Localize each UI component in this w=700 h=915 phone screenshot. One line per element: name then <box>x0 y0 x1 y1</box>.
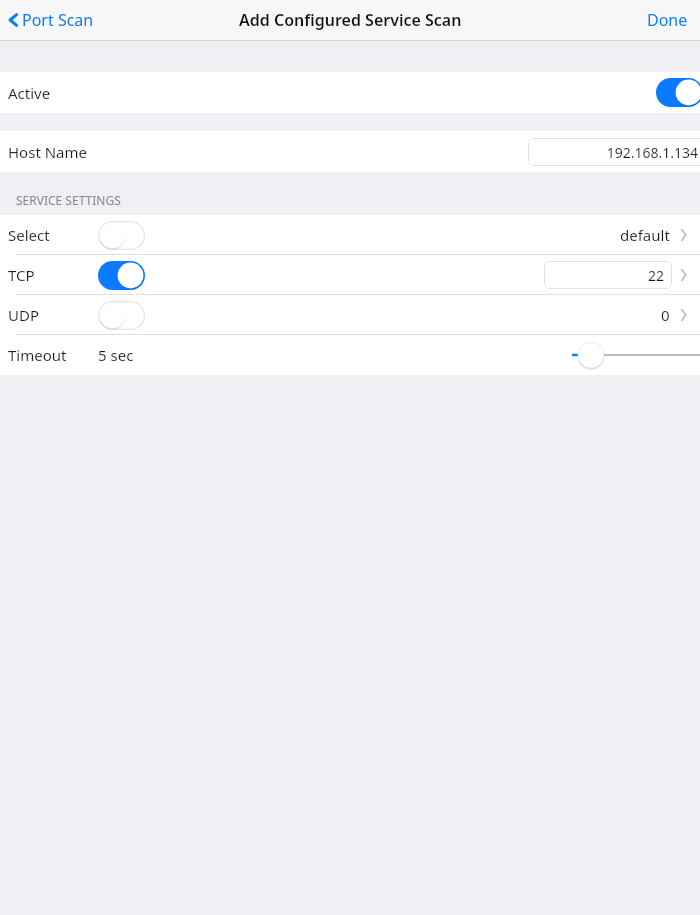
staticText: TCP <box>8 265 35 285</box>
staticText: Host Name <box>8 142 87 162</box>
staticText: default <box>620 225 670 245</box>
button[interactable]: Timeout <box>0 335 700 375</box>
button[interactable]: Host Name <box>0 131 700 172</box>
button[interactable]: UDP <box>0 295 700 335</box>
button[interactable]: Timeout slider <box>572 338 700 372</box>
button[interactable]: TCP <box>0 255 700 295</box>
button[interactable]: Done <box>647 9 688 31</box>
staticText: Done <box>647 9 688 31</box>
staticText: Add Configured Service Scan <box>239 9 462 31</box>
staticText: Timeout <box>8 345 67 365</box>
button[interactable]: Port Scan <box>8 9 94 31</box>
staticText: 192.168.1.134 <box>606 143 698 162</box>
button[interactable]: Toggle on <box>98 261 145 290</box>
button[interactable]: Select <box>0 215 700 255</box>
staticText: 5 sec <box>98 345 134 365</box>
button[interactable]: Toggle off <box>98 221 145 250</box>
staticText: 0 <box>661 305 670 325</box>
button[interactable]: 192.168.1.134 <box>528 138 700 166</box>
staticText: 22 <box>647 266 664 285</box>
button[interactable]: Active <box>0 72 700 113</box>
staticText: Port Scan <box>22 9 94 31</box>
button[interactable]: 22 <box>544 261 672 289</box>
staticText: SERVICE SETTINGS <box>16 192 121 208</box>
button[interactable]: Toggle off <box>98 301 145 330</box>
button[interactable]: Toggle on <box>656 78 700 107</box>
staticText: UDP <box>8 305 39 325</box>
staticText: Active <box>8 83 51 103</box>
staticText: Select <box>8 225 50 245</box>
